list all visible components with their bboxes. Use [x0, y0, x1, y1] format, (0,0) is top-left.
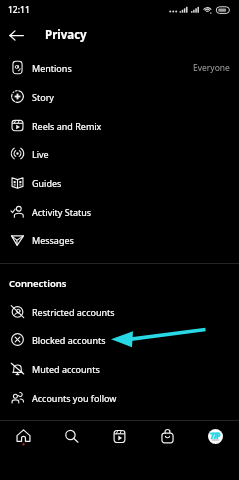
- button[interactable]: Profile: [191, 421, 239, 452]
- staticText: Activity Status: [32, 206, 230, 218]
- staticText: Connections: [9, 277, 67, 289]
- button[interactable]: Activity Status: [0, 197, 239, 226]
- staticText: Blocked accounts: [32, 334, 230, 346]
- button[interactable]: Mentions: [0, 53, 239, 82]
- button[interactable]: Guides: [0, 168, 239, 197]
- staticText: Mentions: [32, 62, 193, 74]
- button[interactable]: Shop: [143, 421, 191, 452]
- button[interactable]: Back: [0, 20, 33, 50]
- button[interactable]: Restricted accounts: [0, 297, 239, 326]
- staticText: Story: [32, 91, 230, 103]
- button[interactable]: Accounts you follow: [0, 383, 239, 412]
- button[interactable]: Story: [0, 82, 239, 111]
- button[interactable]: Blocked accounts: [0, 325, 239, 354]
- button[interactable]: Muted accounts: [0, 354, 239, 383]
- button[interactable]: Live: [0, 139, 239, 168]
- staticText: Everyone: [193, 62, 230, 74]
- button[interactable]: Home: [0, 421, 47, 452]
- staticText: Muted accounts: [32, 363, 230, 375]
- staticText: Guides: [32, 177, 230, 189]
- staticText: Accounts you follow: [32, 392, 230, 404]
- staticText: Live: [32, 148, 230, 160]
- button[interactable]: Messages: [0, 225, 239, 254]
- button[interactable]: Reels and Remix: [0, 111, 239, 140]
- staticText: Reels and Remix: [32, 120, 230, 132]
- staticText: Messages: [32, 234, 230, 246]
- staticText: Privacy: [45, 27, 87, 43]
- staticText: Restricted accounts: [32, 306, 230, 318]
- button[interactable]: Reels: [95, 421, 143, 452]
- staticText: 12:11: [8, 4, 30, 16]
- button[interactable]: Search: [47, 421, 95, 452]
